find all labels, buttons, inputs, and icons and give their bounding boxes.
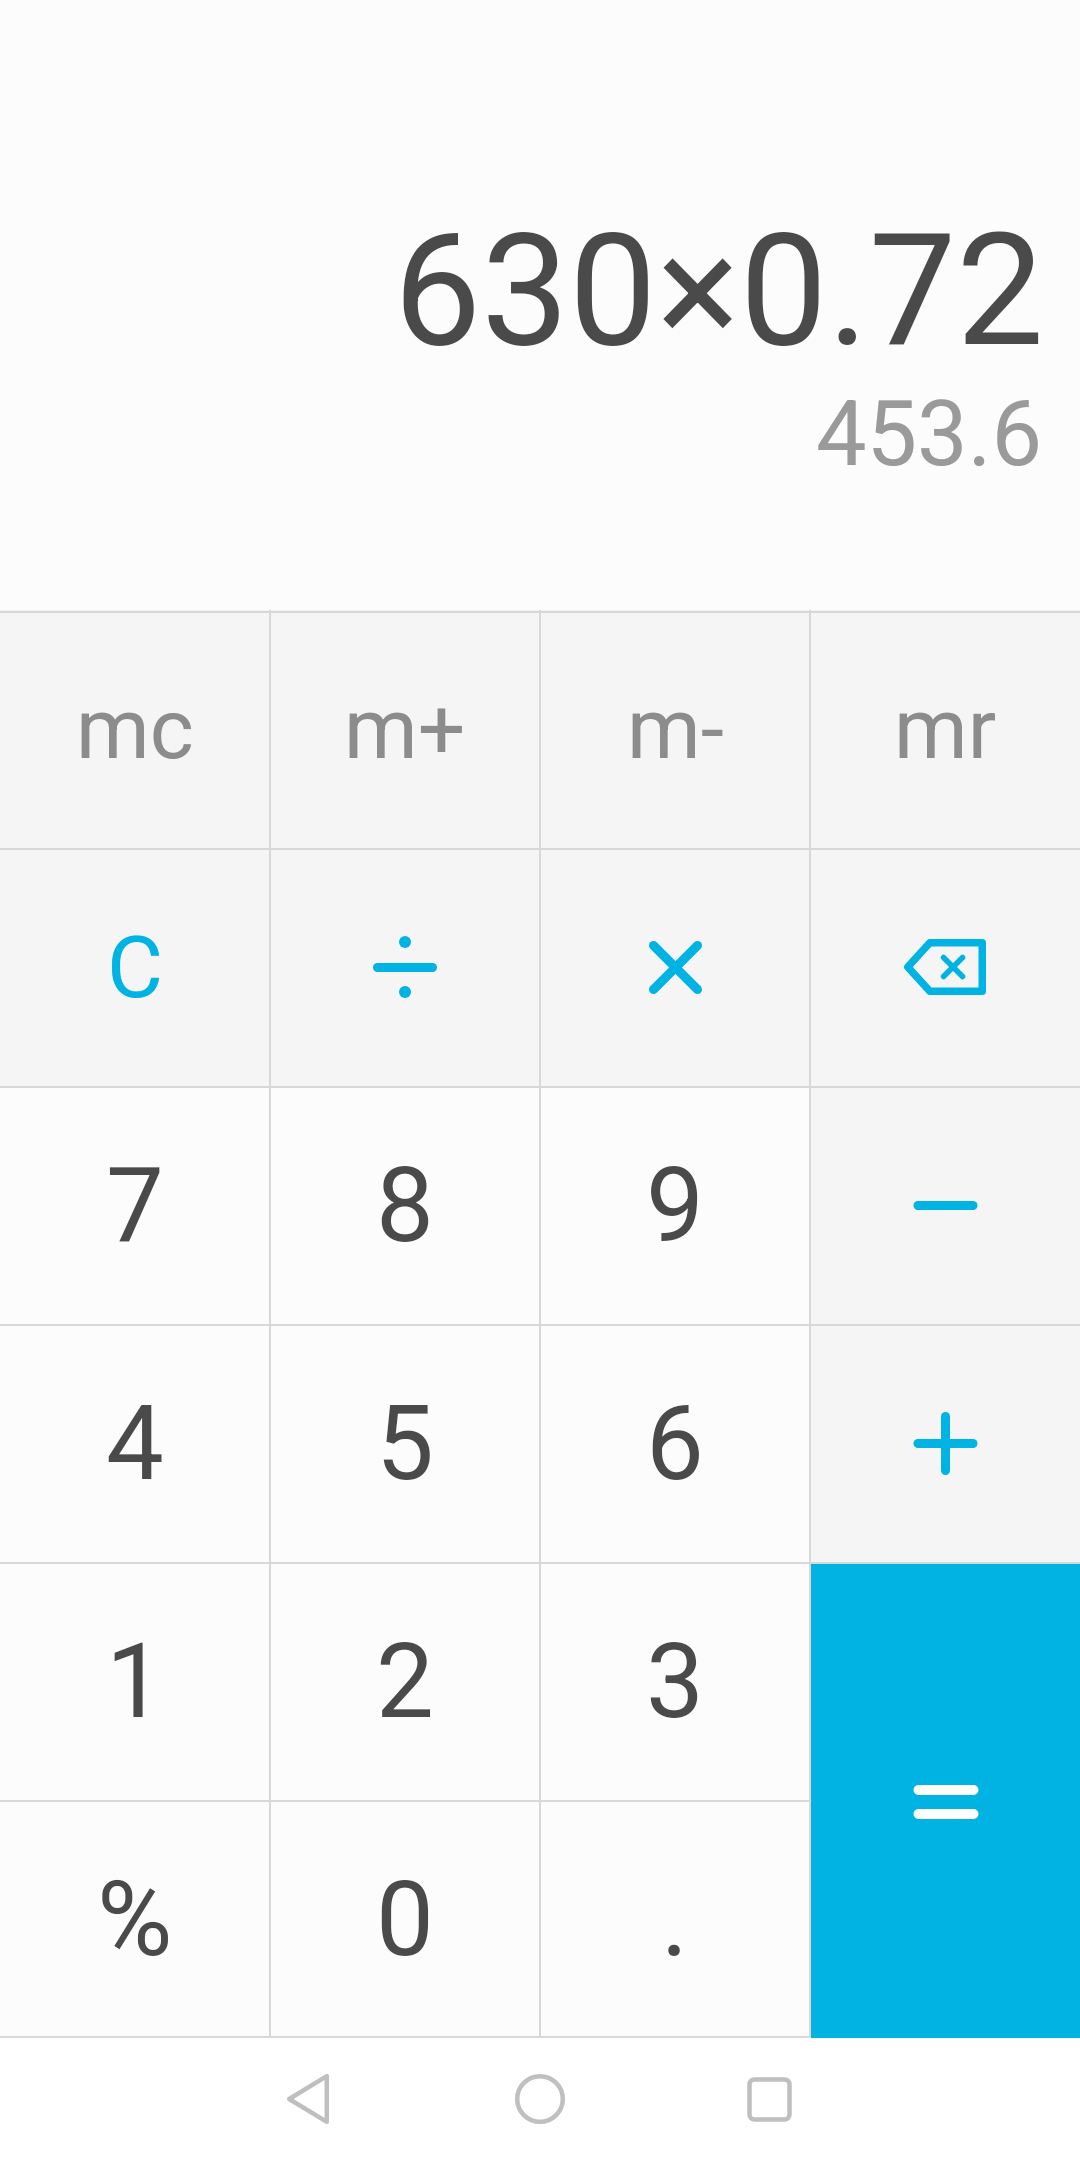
staticText: 8 — [376, 1145, 434, 1266]
staticText: % — [97, 1859, 173, 1980]
button[interactable]: 0 — [270, 1800, 540, 2038]
button[interactable]: Backspace — [810, 848, 1080, 1086]
staticText: mc — [76, 680, 194, 778]
button[interactable]: Equals — [811, 1564, 1080, 2042]
staticText: 7 — [106, 1145, 164, 1266]
button[interactable]: 2 — [270, 1562, 540, 1800]
staticText: 3 — [646, 1621, 704, 1742]
button[interactable]: 3 — [540, 1562, 810, 1800]
staticText: . — [661, 1859, 689, 1980]
button[interactable]: mc — [0, 610, 270, 848]
staticText: 4 — [106, 1383, 164, 1504]
button[interactable]: C — [0, 848, 270, 1086]
staticText: 6 — [646, 1383, 704, 1504]
button[interactable]: Plus — [810, 1324, 1080, 1562]
staticText: 9 — [646, 1145, 704, 1266]
staticText: m- — [627, 680, 724, 778]
button[interactable]: . — [540, 1800, 810, 2038]
button[interactable]: Recent apps — [709, 2039, 829, 2159]
button[interactable]: mr — [810, 610, 1080, 848]
button[interactable]: 1 — [0, 1562, 270, 1800]
button[interactable]: Minus — [810, 1086, 1080, 1324]
button[interactable]: % — [0, 1800, 270, 2038]
staticText: C — [107, 917, 163, 1018]
staticText: 1 — [106, 1621, 164, 1742]
staticText: 2 — [376, 1621, 434, 1742]
button[interactable]: 9 — [540, 1086, 810, 1324]
staticText: 453.6 — [0, 382, 1042, 487]
staticText: m+ — [344, 680, 466, 778]
button[interactable]: 5 — [270, 1324, 540, 1562]
button[interactable]: Home — [480, 2039, 600, 2159]
button[interactable]: Multiply — [540, 848, 810, 1086]
button[interactable]: Back — [248, 2039, 368, 2159]
button[interactable]: 8 — [270, 1086, 540, 1324]
button[interactable]: Divide — [270, 848, 540, 1086]
staticText: 5 — [376, 1383, 434, 1504]
button[interactable]: 4 — [0, 1324, 270, 1562]
staticText: 0 — [376, 1859, 434, 1980]
button[interactable]: m+ — [270, 610, 540, 848]
button[interactable]: 7 — [0, 1086, 270, 1324]
staticText: 630×0.72 — [0, 199, 1044, 382]
button[interactable]: 6 — [540, 1324, 810, 1562]
staticText: mr — [894, 680, 997, 778]
button[interactable]: m- — [540, 610, 810, 848]
